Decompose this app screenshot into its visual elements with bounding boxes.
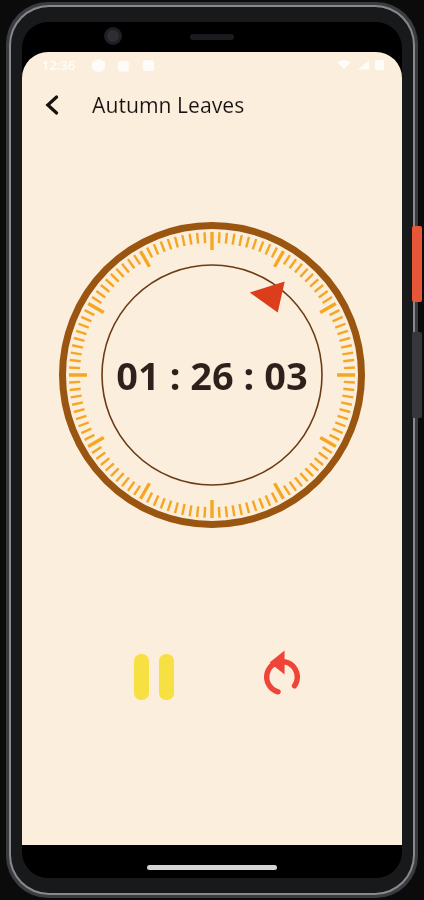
button[interactable]: Back [30, 82, 76, 128]
staticText: 01 : 26 : 03 [116, 349, 308, 401]
button[interactable]: Reset [246, 641, 318, 713]
button[interactable]: Pause [118, 641, 190, 713]
staticText: 12:36 [42, 56, 76, 74]
staticText: Autumn Leaves [92, 91, 245, 120]
